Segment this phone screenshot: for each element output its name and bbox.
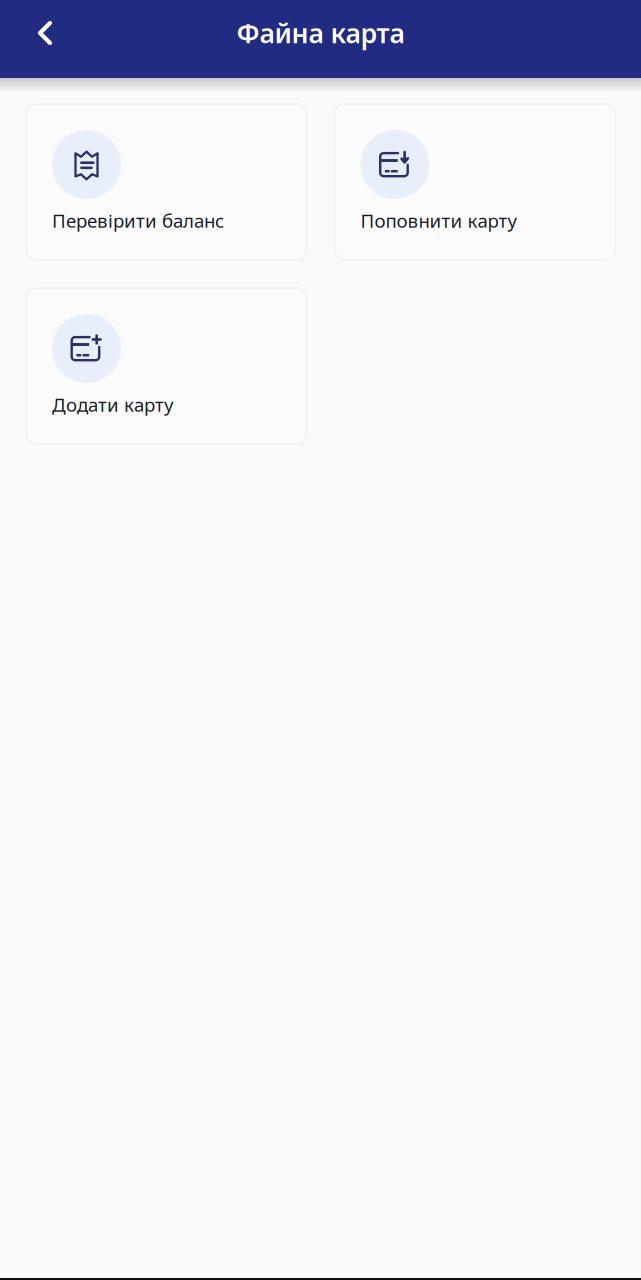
staticText: Поповнити карту	[360, 208, 517, 233]
button[interactable]: Перевірити баланс	[26, 104, 306, 260]
staticText: Перевірити баланс	[52, 208, 224, 233]
button[interactable]: Додати карту	[26, 288, 306, 444]
button[interactable]: Поповнити карту	[334, 104, 615, 260]
staticText: Додати карту	[52, 392, 174, 417]
staticText: Файна карта	[236, 15, 404, 51]
button[interactable]: Back	[19, 7, 71, 59]
